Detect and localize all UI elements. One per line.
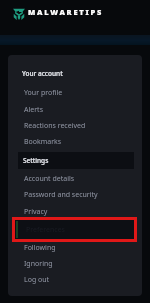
staticText: Bookmarks: [24, 137, 62, 147]
button[interactable]: Password and security: [8, 187, 142, 203]
button[interactable]: Account details: [8, 171, 142, 187]
button[interactable]: Settings: [18, 152, 134, 169]
staticText: Following: [24, 243, 56, 253]
staticText: Password and security: [24, 190, 98, 200]
button[interactable]: Bookmarks: [8, 134, 142, 150]
button[interactable]: MalwareTips home: [0, 0, 150, 24]
button[interactable]: Preferences: [12, 217, 137, 242]
staticText: Alerts: [24, 105, 43, 115]
staticText: Privacy: [24, 207, 48, 217]
staticText: Settings: [23, 156, 49, 165]
button[interactable]: Your profile: [8, 85, 142, 101]
button[interactable]: Following: [8, 240, 142, 256]
button[interactable]: Privacy: [8, 204, 142, 220]
button[interactable]: Alerts: [8, 102, 142, 118]
button[interactable]: Reactions received: [8, 118, 142, 134]
staticText: Preferences: [26, 225, 65, 235]
button[interactable]: Log out: [8, 272, 142, 288]
staticText: Account details: [24, 174, 75, 184]
staticText: Reactions received: [24, 121, 86, 131]
staticText: MALWARETIPS: [28, 7, 104, 17]
staticText: Ignoring: [24, 259, 53, 269]
staticText: Your account: [22, 69, 63, 78]
staticText: Log out: [24, 275, 50, 285]
staticText: Your profile: [24, 88, 63, 98]
button[interactable]: Your account: [8, 65, 142, 81]
button[interactable]: Ignoring: [8, 256, 142, 272]
other: MalwareTips home: [13, 8, 25, 20]
